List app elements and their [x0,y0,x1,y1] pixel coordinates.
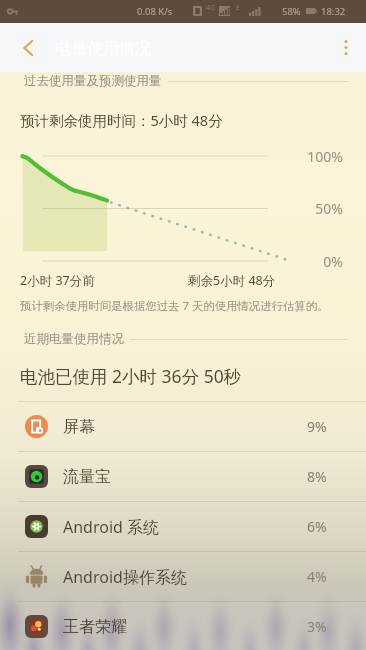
staticText: 3% [307,617,327,636]
staticText: 流量宝 [63,467,111,487]
staticText: 电池已使用 2小时 36分 50秒 [20,364,242,388]
staticText: 6% [307,517,327,536]
staticText: 0% [298,252,343,271]
staticText: 18:32 [321,5,346,18]
staticText: 2小时 37分前 [20,272,95,289]
staticText: 58% [282,5,301,18]
button[interactable]: Android操作系统 [0,552,366,601]
staticText: 100% [298,147,343,166]
staticText: 电量使用情况 [55,39,151,59]
staticText: 近期电量使用情况 [24,331,124,347]
staticText: 9% [307,417,327,436]
button[interactable]: 屏幕 [0,402,366,451]
staticText: 8% [307,467,327,486]
staticText: 4% [307,567,327,586]
staticText: 剩余5小时 48分 [188,272,276,289]
staticText: 过去使用量及预测使用量 [24,73,162,89]
staticText: E [236,3,240,13]
staticText: 王者荣耀 [63,617,127,637]
staticText: 0.08 K/s [137,5,173,18]
staticText: 屏幕 [63,417,95,437]
button[interactable]: Android 系统 [0,502,366,551]
staticText: 50% [298,199,343,218]
staticText: Android操作系统 [63,566,187,588]
staticText: 预计剩余使用时间：5小时 48分 [20,110,223,130]
staticText: Android 系统 [63,516,160,538]
staticText: 预计剩余使用时间是根据您过去 7 天的使用情况进行估算的。 [20,298,329,314]
staticText: 4G [206,3,216,13]
button[interactable]: 王者荣耀 [0,602,366,650]
button[interactable]: 流量宝 [0,452,366,501]
button[interactable]: Back [11,23,45,72]
button[interactable]: More options [326,23,366,72]
